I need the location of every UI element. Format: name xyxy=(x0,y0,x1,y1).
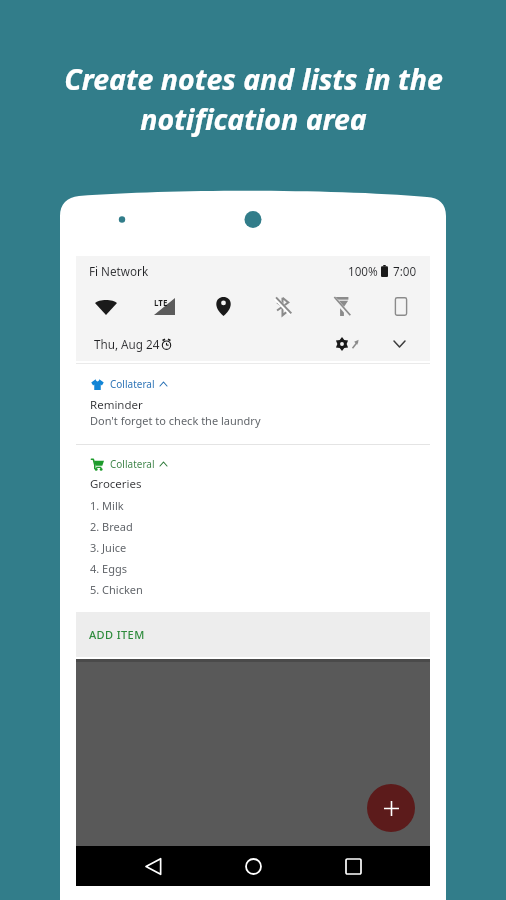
staticText: 4. Eggs xyxy=(90,561,128,576)
other: Wi-Fi xyxy=(95,298,117,315)
staticText: Collateral xyxy=(110,457,155,471)
button[interactable]: Expand xyxy=(388,333,410,355)
button[interactable]: Collateral xyxy=(76,445,430,612)
staticText: 2. Bread xyxy=(90,519,133,534)
staticText: Reminder xyxy=(90,397,143,413)
button[interactable]: Home xyxy=(230,846,276,886)
staticText: 5. Chicken xyxy=(90,582,143,597)
staticText: 1. Milk xyxy=(90,498,124,513)
button[interactable]: Settings xyxy=(335,333,363,355)
other: Flashlight off xyxy=(334,297,350,316)
other: Location xyxy=(216,297,231,316)
staticText: Create notes and lists in the notificati… xyxy=(64,60,443,139)
staticText: Collateral xyxy=(110,377,155,391)
staticText: LTE xyxy=(154,297,168,308)
other: Auto rotate xyxy=(394,297,408,316)
staticText: Fi Network xyxy=(89,263,149,279)
button[interactable]: Recents xyxy=(330,846,376,886)
staticText: 100% xyxy=(348,263,378,279)
staticText: ADD ITEM xyxy=(89,627,145,642)
button[interactable]: Add note xyxy=(367,784,415,832)
button[interactable]: Collateral xyxy=(76,364,430,444)
other: Bluetooth off xyxy=(274,297,291,316)
staticText: Don't forget to check the laundry xyxy=(90,413,261,428)
button[interactable]: ADD ITEM xyxy=(76,612,430,657)
other: Mobile data xyxy=(154,298,175,315)
button[interactable]: Back xyxy=(130,846,176,886)
staticText: 3. Juice xyxy=(90,540,127,555)
staticText: Groceries xyxy=(90,476,142,492)
staticText: Thu, Aug 24 xyxy=(94,336,160,352)
staticText: 7:00 xyxy=(393,263,417,279)
